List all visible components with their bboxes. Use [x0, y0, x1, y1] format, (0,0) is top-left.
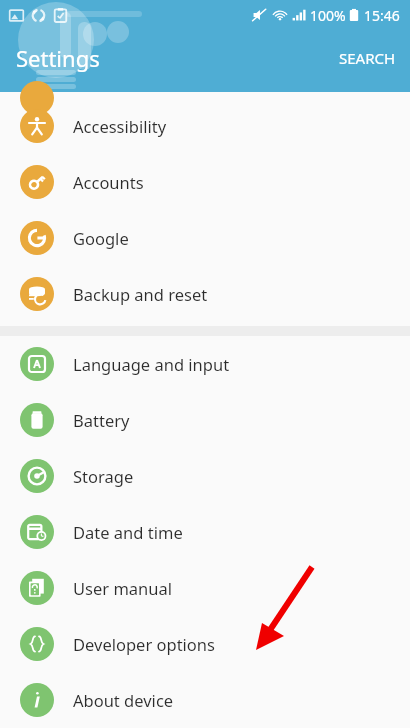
staticText: Google [73, 227, 129, 249]
staticText: Backup and reset [73, 283, 208, 305]
button[interactable]: Storage [0, 448, 410, 504]
button[interactable]: Accounts [0, 154, 410, 210]
staticText: Developer options [73, 633, 215, 655]
staticText: User manual [73, 577, 172, 599]
button[interactable]: Backup and reset [0, 266, 410, 322]
button[interactable]: Date and time [0, 504, 410, 560]
staticText: Accessibility [73, 115, 167, 137]
staticText: Battery [73, 409, 130, 431]
staticText: Accounts [73, 171, 144, 193]
staticText: Language and input [73, 353, 230, 375]
staticText: Storage [73, 465, 134, 487]
button[interactable]: Google [0, 210, 410, 266]
button[interactable]: Battery [0, 392, 410, 448]
button[interactable]: Language and input [0, 336, 410, 392]
button[interactable]: Accessibility [0, 98, 410, 154]
button[interactable]: About device [0, 672, 410, 728]
button[interactable]: User manual [0, 560, 410, 616]
staticText: SEARCH [339, 48, 396, 68]
staticText: Settings [16, 43, 100, 73]
staticText: 100% [310, 6, 346, 25]
staticText: About device [73, 689, 174, 711]
button[interactable]: SEARCH [325, 40, 410, 76]
staticText: 15:46 [364, 6, 400, 25]
staticText: Date and time [73, 521, 183, 543]
button[interactable]: Developer options [0, 616, 410, 672]
